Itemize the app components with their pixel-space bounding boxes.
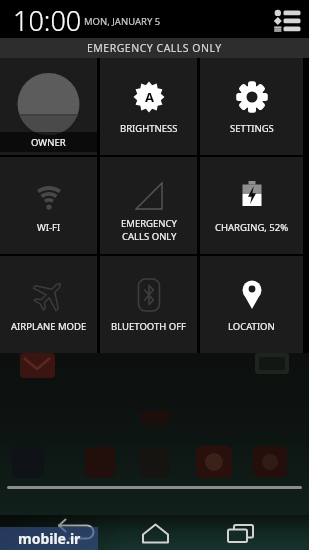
button[interactable]: WI-FI	[0, 157, 97, 254]
staticText: 10:00	[13, 2, 82, 39]
staticText: WI-FI	[37, 221, 61, 234]
staticText: EMERGENCY CALLS ONLY	[87, 41, 222, 55]
staticText: BRIGHTNESS	[120, 122, 178, 135]
staticText: mobile.ir	[18, 529, 81, 548]
button[interactable]: SETTINGS	[200, 58, 303, 155]
button[interactable]: CHARGING, 52%	[200, 157, 303, 254]
staticText: SETTINGS	[230, 122, 274, 135]
staticText: CHARGING, 52%	[215, 221, 289, 234]
button[interactable]: A	[100, 58, 197, 155]
staticText: CALLS ONLY	[122, 230, 177, 243]
staticText: EMERGENCY	[121, 217, 177, 230]
button[interactable]	[206, 515, 309, 550]
button[interactable]: AIRPLANE MODE	[0, 256, 97, 353]
button[interactable]: EMERGENCY	[100, 157, 197, 254]
button[interactable]	[103, 515, 206, 550]
staticText: BLUETOOTH OFF	[111, 320, 187, 333]
button[interactable]: OWNER	[0, 58, 97, 155]
staticText: LOCATION	[228, 320, 275, 333]
staticText: MON, JANUARY 5	[84, 15, 161, 28]
staticText: OWNER	[31, 136, 66, 149]
staticText: A	[145, 88, 154, 106]
button[interactable]: BLUETOOTH OFF	[100, 256, 197, 353]
staticText: AIRPLANE MODE	[11, 320, 87, 333]
button[interactable]	[0, 515, 103, 550]
button[interactable]	[272, 8, 304, 34]
button[interactable]: LOCATION	[200, 256, 303, 353]
